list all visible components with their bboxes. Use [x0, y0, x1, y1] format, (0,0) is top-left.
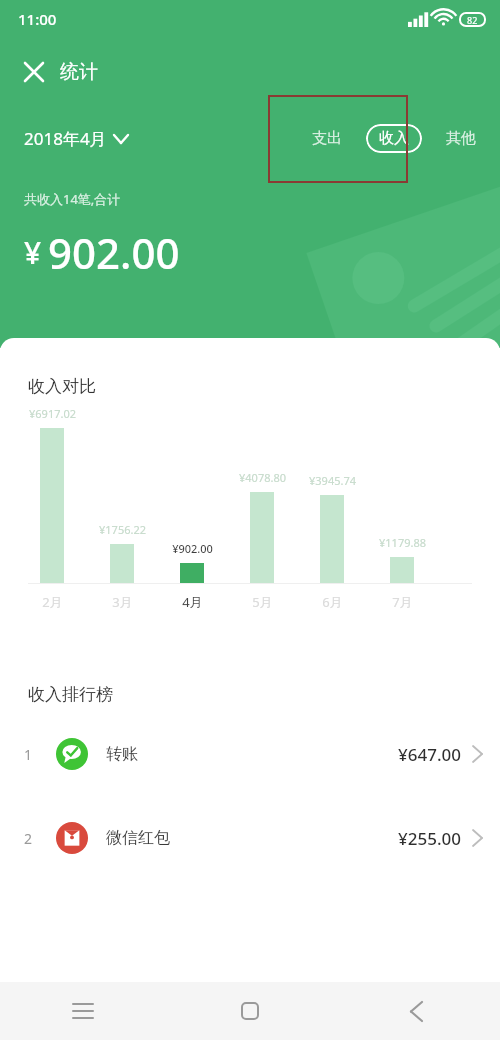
staticText: 共收入14笔,合计 [24, 190, 121, 208]
staticText: ¥1756.22 [99, 522, 146, 537]
staticText: ¥4078.80 [239, 470, 286, 485]
staticText: ¥255.00 [398, 827, 461, 850]
staticText: 微信红包 [106, 828, 170, 848]
staticText: 收入 [379, 129, 409, 148]
staticText: ¥647.00 [398, 743, 461, 766]
staticText: 收入对比 [28, 376, 96, 397]
button[interactable]: 收入 [366, 124, 422, 153]
staticText: ¥ [24, 232, 42, 273]
staticText: 7月 [392, 593, 413, 611]
button[interactable]: 2 [0, 815, 500, 861]
staticText: 统计 [60, 60, 98, 84]
staticText: 82 [467, 14, 478, 26]
staticText: 902.00 [48, 224, 180, 281]
staticText: 2018年4月 [24, 127, 107, 150]
staticText: ¥3945.74 [309, 473, 356, 488]
staticText: ¥1179.88 [379, 535, 426, 550]
button[interactable]: Close [16, 54, 52, 90]
staticText: 11:00 [18, 9, 57, 29]
staticText: 5月 [252, 593, 273, 611]
staticText: 1 [24, 745, 33, 764]
staticText: 2月 [42, 593, 63, 611]
staticText: 转账 [106, 744, 138, 764]
button[interactable]: 其他 [440, 123, 482, 154]
staticText: 3月 [112, 593, 133, 611]
button[interactable]: 支出 [306, 123, 348, 154]
button[interactable]: Recent apps [0, 982, 166, 1040]
staticText: 4月 [182, 593, 203, 611]
button[interactable]: Home [166, 982, 333, 1040]
staticText: 收入排行榜 [28, 684, 113, 705]
button[interactable]: Back [333, 982, 500, 1040]
staticText: 2 [24, 829, 33, 848]
button[interactable]: 1 [0, 731, 500, 777]
staticText: ¥902.00 [172, 541, 213, 556]
button[interactable]: 2018年4月 [24, 127, 128, 150]
staticText: ¥6917.02 [29, 406, 76, 421]
staticText: 6月 [322, 593, 343, 611]
